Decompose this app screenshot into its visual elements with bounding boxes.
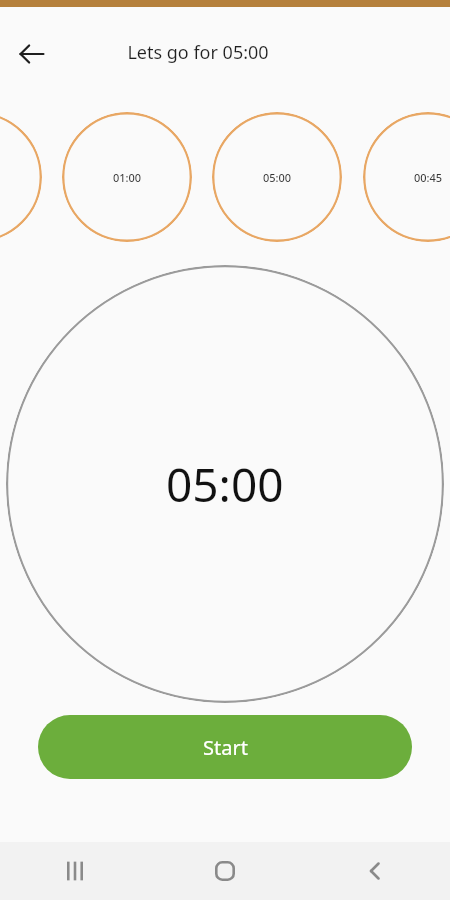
button[interactable]: Start	[38, 715, 412, 779]
staticText: Start	[203, 734, 248, 761]
button[interactable]: Recent apps	[0, 842, 150, 900]
staticText: 05:00	[263, 170, 292, 185]
button[interactable]: 01:00	[62, 112, 192, 242]
button[interactable]: 05:00	[6, 265, 444, 703]
button[interactable]: Back	[300, 842, 450, 900]
staticText: 01:00	[113, 170, 142, 185]
staticText: 05:00	[166, 453, 284, 516]
button[interactable]: 02:00	[0, 112, 42, 242]
button[interactable]: Back	[10, 32, 54, 76]
button[interactable]: Home	[150, 842, 300, 900]
button[interactable]: 00:45	[363, 112, 450, 242]
staticText: 00:45	[414, 170, 443, 185]
button[interactable]: 05:00	[212, 112, 342, 242]
staticText: Lets go for 05:00	[60, 40, 336, 65]
